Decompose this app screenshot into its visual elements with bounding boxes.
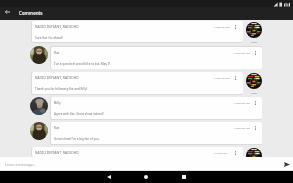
staticText: Sure Kat. Go ahead!: [35, 36, 63, 40]
button[interactable]: Host profile photo: [246, 22, 262, 38]
staticText: 5 minutes ago: [214, 25, 231, 28]
button[interactable]: RADIO DEFIANT, RADIOHD: [32, 21, 243, 42]
staticText: 5 minutes ago: [234, 126, 251, 129]
staticText: 5 minutes ago: [234, 101, 251, 104]
staticText: HOST: [251, 91, 258, 94]
button[interactable]: More options: [251, 124, 259, 131]
button[interactable]: More options: [231, 74, 239, 81]
staticText: Kat: [54, 50, 60, 55]
button[interactable]: More options: [251, 99, 259, 106]
staticText: RADIO DEFIANT, RADIOHD: [35, 24, 79, 29]
button[interactable]: Host profile photo: [246, 148, 262, 164]
button[interactable]: RADIO DEFIANT, RADIOHD: [32, 72, 243, 94]
button[interactable]: Profile photo: [30, 46, 48, 64]
button[interactable]: Profile photo: [30, 97, 48, 115]
button[interactable]: More options: [231, 23, 239, 30]
staticText: Comments: [19, 10, 43, 16]
staticText: Leave a message...: [5, 162, 36, 167]
staticText: Agree with Kat. Great show indeed!: [54, 112, 104, 116]
staticText: Kat: [54, 125, 60, 130]
button[interactable]: More options: [231, 149, 239, 156]
staticText: RADIO DEFIANT, RADIOHD: [35, 75, 79, 80]
button[interactable]: More options: [251, 49, 259, 56]
button[interactable]: Home: [136, 171, 156, 183]
staticText: 19 days ago: [214, 151, 228, 154]
staticText: Great show! I'm a big fan of you.: [54, 137, 100, 141]
button[interactable]: Back: [99, 171, 119, 183]
staticText: 5 minutes ago: [214, 76, 231, 79]
button[interactable]: Profile photo: [30, 122, 48, 140]
staticText: HOST: [251, 40, 258, 43]
staticText: Billy: [54, 100, 61, 105]
button[interactable]: RADIO DEFIANT, RADIOHD: [32, 147, 243, 157]
button[interactable]: Billy: [51, 97, 262, 119]
button[interactable]: Recent apps: [174, 171, 194, 183]
button[interactable]: Send message: [281, 158, 292, 170]
button[interactable]: Kat: [51, 47, 262, 69]
button[interactable]: Kat: [51, 122, 262, 144]
staticText: I've a question! would like to ask. May …: [54, 62, 111, 66]
button[interactable]: Navigate back: [1, 6, 13, 18]
staticText: Thank you for following Kat and Billy!: [35, 87, 88, 91]
button[interactable]: Host profile photo: [246, 73, 262, 89]
staticText: 5 minutes ago: [234, 51, 251, 54]
staticText: RADIO DEFIANT, RADIOHD: [35, 150, 79, 155]
